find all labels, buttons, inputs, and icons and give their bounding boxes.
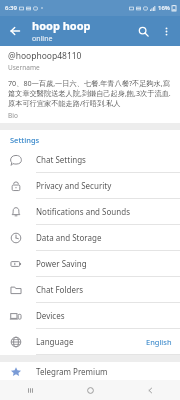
staticText: Chat Settings — [36, 154, 86, 165]
staticText: Devices — [36, 310, 65, 321]
staticText: Notifications and Sounds — [36, 206, 130, 217]
staticText: @hoophoop48110 — [8, 50, 82, 62]
staticText: Power Saving — [36, 258, 87, 269]
button[interactable]: Power Saving — [0, 251, 180, 276]
button[interactable]: 70、80一百歲,一日六、七餐.年青八餐?不足夠水,寫篇文章交醫院送老人院,到鎌… — [0, 75, 180, 123]
button[interactable]: Chat Folders — [0, 277, 180, 302]
button[interactable]: Notifications and Sounds — [0, 199, 180, 224]
button[interactable]: More options — [155, 20, 177, 42]
staticText: hoop hoop — [32, 18, 91, 33]
staticText: Username — [8, 63, 40, 72]
staticText: Telegram Premium — [36, 366, 108, 377]
button[interactable]: Chat Settings — [0, 147, 180, 172]
staticText: Data and Storage — [36, 232, 102, 243]
staticText: English — [146, 337, 172, 347]
staticText: online — [32, 34, 53, 44]
button[interactable]: Search — [131, 19, 155, 43]
staticText: Language — [36, 336, 74, 347]
button[interactable]: Data and Storage — [0, 225, 180, 250]
staticText: 6:39 — [5, 4, 17, 12]
button[interactable]: Language — [0, 329, 180, 354]
staticText: Bio — [8, 111, 18, 120]
button[interactable]: @hoophoop48110 — [0, 46, 180, 75]
button[interactable]: Back — [120, 380, 180, 400]
button[interactable]: Privacy and Security — [0, 173, 180, 198]
staticText: Privacy and Security — [36, 180, 112, 191]
button[interactable]: Telegram Premium — [0, 362, 180, 380]
staticText: Settings — [10, 135, 40, 145]
staticText: Chat Folders — [36, 284, 84, 295]
staticText: 16% — [158, 4, 170, 12]
staticText: 70、80一百歲,一日六、七餐.年青八餐?不足夠水,寫篇文章交醫院送老人院,到鎌… — [8, 78, 174, 108]
button[interactable]: Back — [4, 20, 26, 42]
button[interactable]: Devices — [0, 303, 180, 328]
button[interactable]: Recent apps — [0, 380, 60, 400]
button[interactable]: Home — [60, 380, 120, 400]
